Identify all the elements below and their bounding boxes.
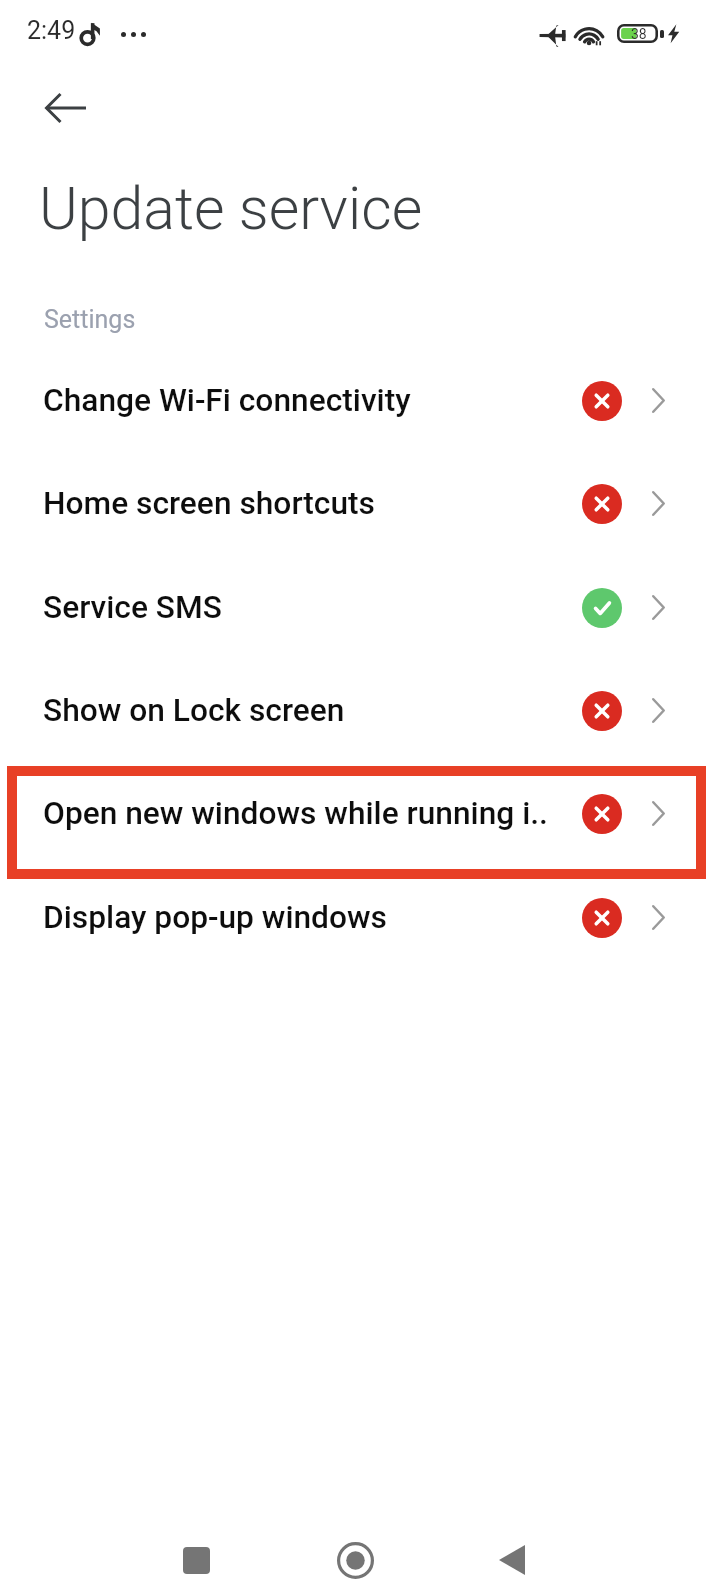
button[interactable]: Recent apps bbox=[156, 1524, 236, 1596]
staticText: Service SMS bbox=[43, 589, 222, 626]
button[interactable]: Back bbox=[472, 1524, 552, 1596]
staticText: Display pop-up windows bbox=[43, 899, 387, 936]
button[interactable]: Service SMS bbox=[0, 556, 712, 659]
staticText: 38 bbox=[631, 26, 647, 42]
button[interactable]: Show on Lock screen bbox=[0, 659, 712, 762]
button[interactable]: Change Wi-Fi connectivity bbox=[0, 349, 712, 452]
button[interactable]: Display pop-up windows bbox=[0, 866, 712, 969]
button[interactable]: Home screen shortcuts bbox=[0, 452, 712, 555]
button[interactable]: Back bbox=[27, 80, 87, 136]
staticText: Home screen shortcuts bbox=[43, 485, 375, 522]
button[interactable]: Home bbox=[315, 1524, 395, 1596]
staticText: Settings bbox=[44, 305, 136, 334]
staticText: 2:49 bbox=[27, 16, 76, 45]
button[interactable]: Open new windows while running i.. bbox=[0, 762, 712, 865]
staticText: Change Wi-Fi connectivity bbox=[43, 382, 411, 419]
staticText: Open new windows while running i.. bbox=[43, 795, 548, 832]
staticText: Update service bbox=[39, 174, 423, 243]
staticText: Show on Lock screen bbox=[43, 692, 345, 729]
